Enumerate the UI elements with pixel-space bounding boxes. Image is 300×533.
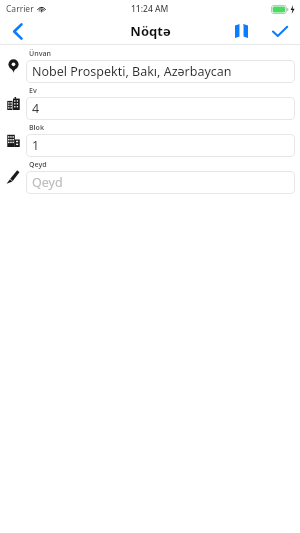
staticText: Ev xyxy=(29,86,37,96)
staticText: Qeyd xyxy=(29,160,47,170)
staticText: Nobel Prospekti, Bakı, Azərbaycan xyxy=(32,63,232,80)
other: House xyxy=(7,97,20,110)
button[interactable]: Map xyxy=(222,18,260,44)
staticText: Qeyd xyxy=(32,174,63,191)
other: Block xyxy=(7,134,20,147)
staticText: Nöqtə xyxy=(130,22,171,40)
staticText: Ünvan xyxy=(29,49,52,59)
button[interactable]: Qeyd xyxy=(26,171,295,194)
other: Location xyxy=(8,59,19,73)
button[interactable]: Done xyxy=(260,18,300,44)
staticText: Carrier xyxy=(6,3,34,15)
button[interactable]: 4 xyxy=(26,97,295,120)
button[interactable]: 1 xyxy=(26,134,295,157)
staticText: 4 xyxy=(32,100,40,117)
staticText: Blok xyxy=(29,123,45,133)
other: Note xyxy=(6,170,20,184)
staticText: 11:24 AM xyxy=(131,3,169,15)
button[interactable]: Back xyxy=(0,18,36,44)
button[interactable]: Nobel Prospekti, Bakı, Azərbaycan xyxy=(26,60,295,83)
staticText: 1 xyxy=(32,137,40,154)
